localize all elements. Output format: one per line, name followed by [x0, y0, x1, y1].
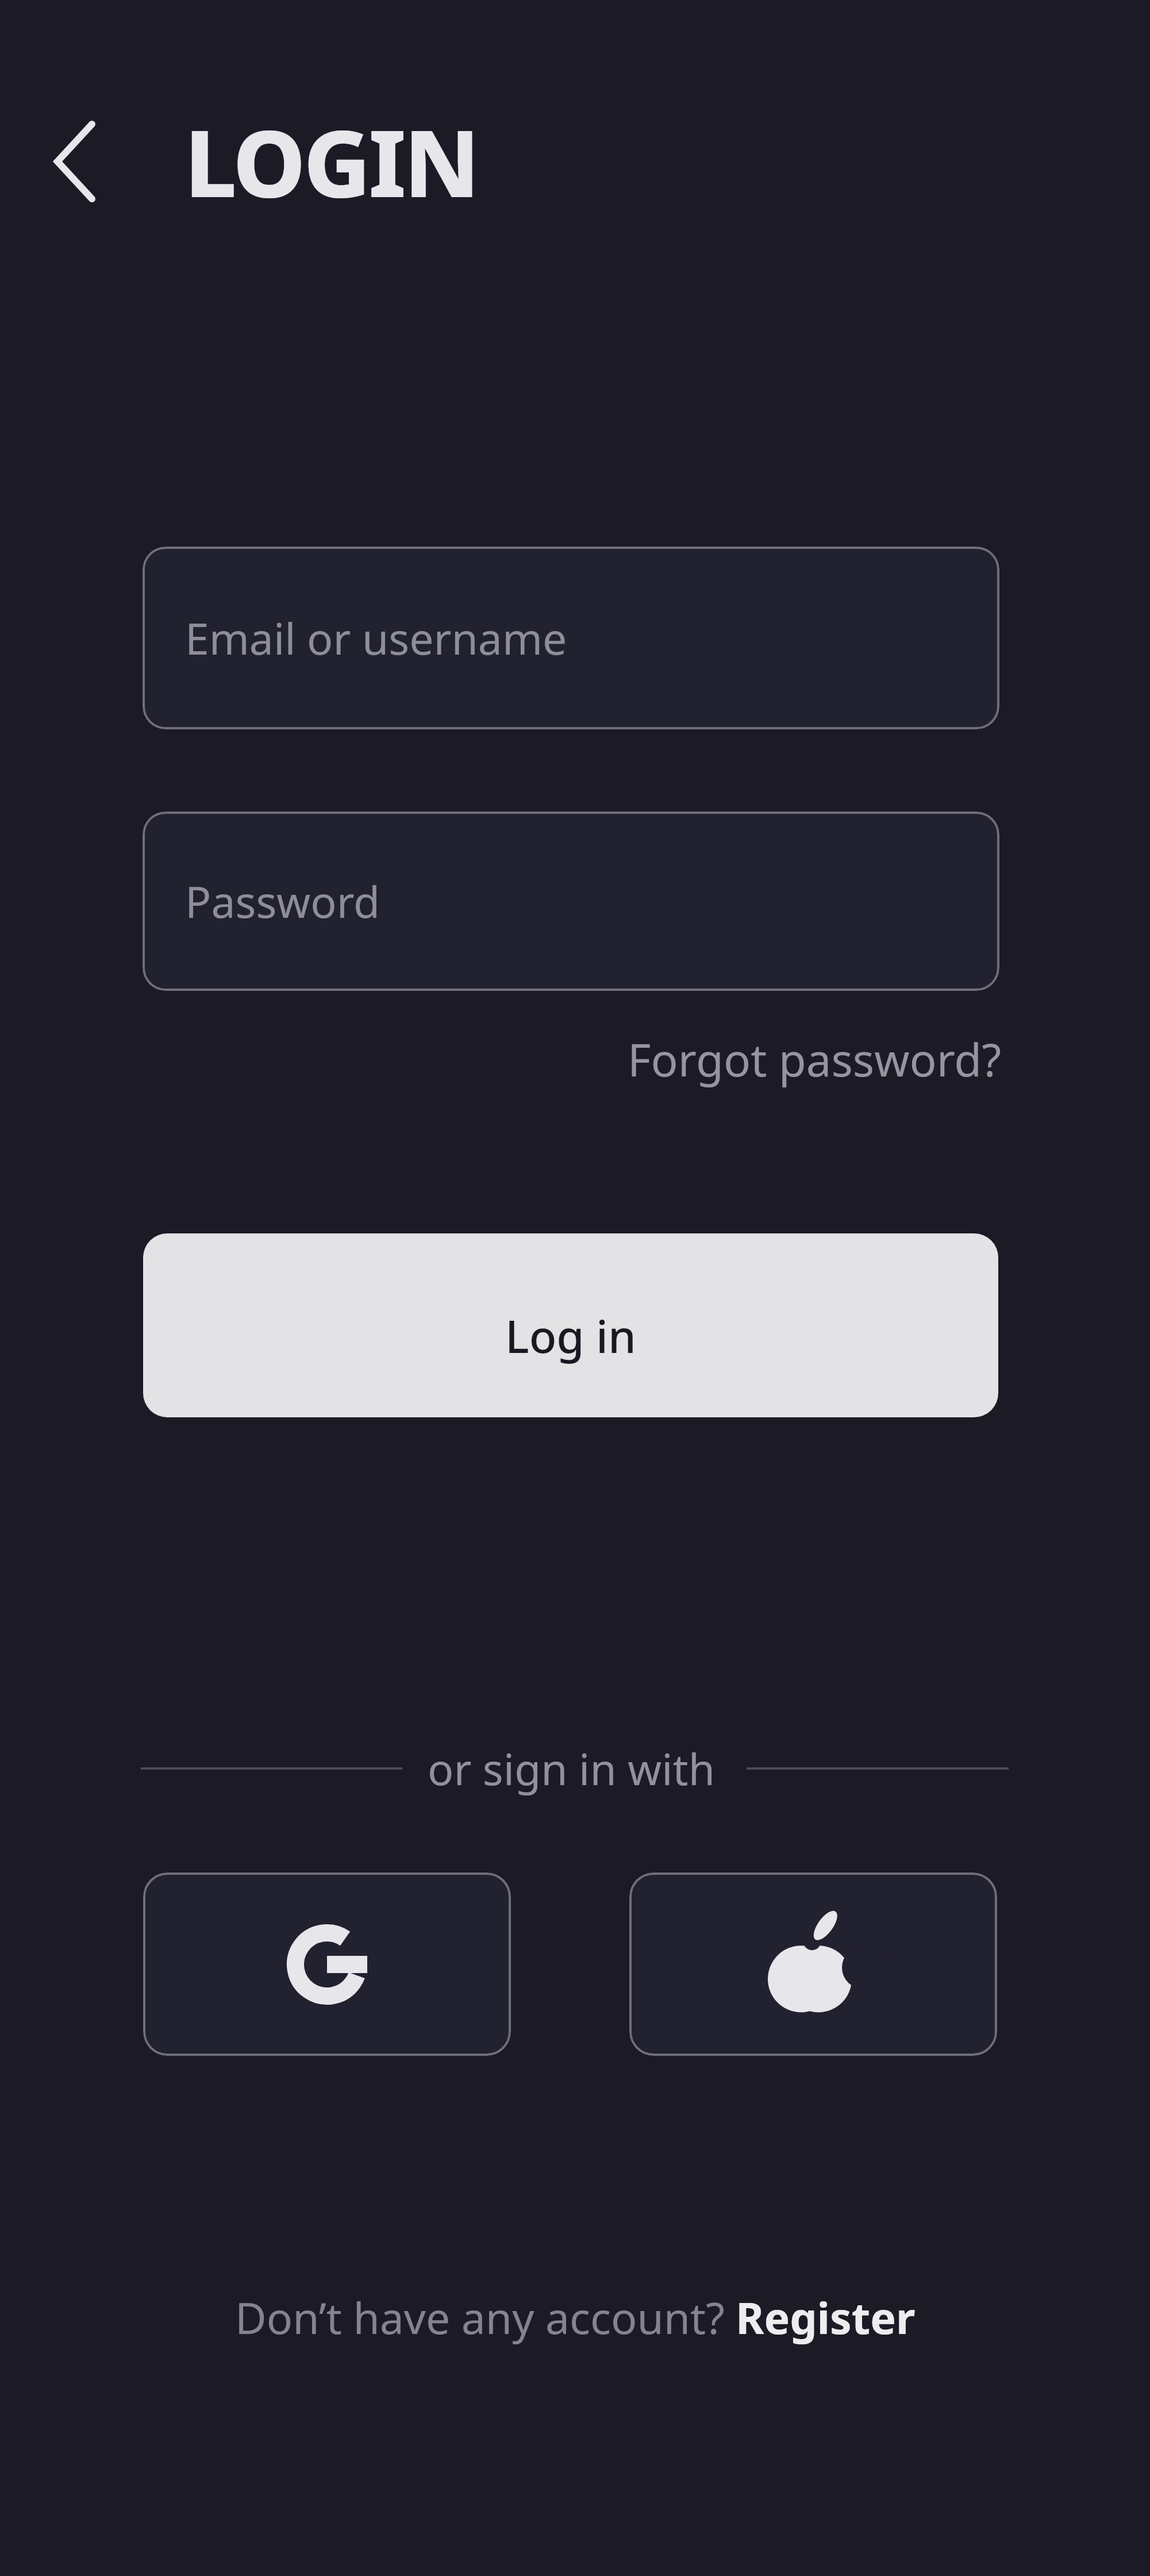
button[interactable]: Don’t have any account? Register — [235, 2288, 916, 2347]
staticText: Password — [185, 872, 380, 931]
button[interactable]: Forgot password? — [628, 1029, 1002, 1090]
button[interactable] — [143, 1873, 511, 2056]
button[interactable]: Email or username — [143, 547, 999, 729]
staticText: or sign in with — [428, 1739, 716, 1798]
button[interactable]: Password — [143, 812, 999, 991]
staticText: Email or username — [185, 609, 567, 667]
button[interactable] — [56, 121, 94, 202]
staticText: Log in — [505, 1305, 636, 1366]
button[interactable]: Log in — [143, 1233, 998, 1417]
staticText: LOGIN — [184, 99, 478, 224]
button[interactable] — [629, 1873, 997, 2056]
